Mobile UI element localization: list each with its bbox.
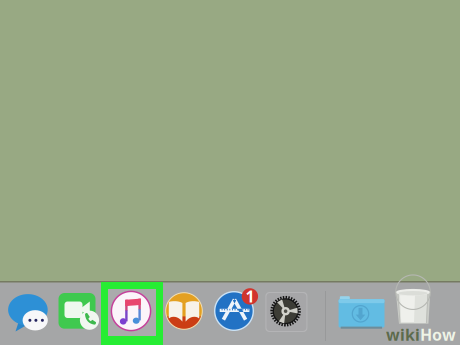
button[interactable]: iTunes xyxy=(110,290,152,332)
button[interactable]: FaceTime xyxy=(56,288,100,334)
button[interactable]: Trash xyxy=(393,288,433,328)
button[interactable]: Messages xyxy=(5,288,51,334)
button[interactable]: iBooks xyxy=(165,292,203,330)
button[interactable]: System Preferences xyxy=(264,290,308,334)
staticText: How xyxy=(420,324,456,345)
button[interactable]: App Store xyxy=(211,287,257,335)
staticText: wiki xyxy=(386,324,420,345)
staticText: 1 xyxy=(245,286,254,307)
button[interactable]: Downloads xyxy=(337,294,387,332)
